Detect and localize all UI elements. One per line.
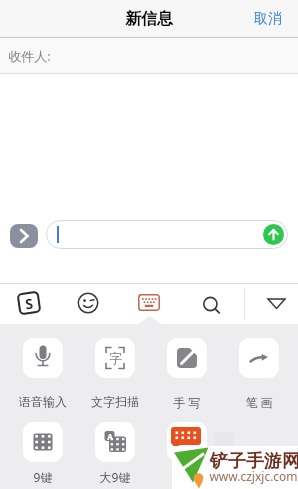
staticText: 字 xyxy=(109,350,122,366)
button[interactable] xyxy=(138,294,160,311)
button[interactable]: 取消 xyxy=(254,10,282,28)
button[interactable]: S xyxy=(17,291,41,315)
button[interactable]: A xyxy=(95,422,135,462)
staticText: 铲子手游网 xyxy=(210,450,298,473)
button[interactable] xyxy=(202,296,222,316)
staticText: 收件人: xyxy=(8,47,51,65)
button[interactable] xyxy=(77,292,99,314)
button[interactable] xyxy=(167,338,207,378)
button[interactable] xyxy=(23,338,63,378)
staticText: S xyxy=(24,293,34,313)
button[interactable] xyxy=(10,224,38,248)
button[interactable]: 收件人: xyxy=(0,38,298,73)
staticText: 大9键 xyxy=(91,469,139,485)
staticText: 9键 xyxy=(19,469,67,485)
staticText: 文字扫描 xyxy=(91,394,139,409)
button[interactable] xyxy=(239,338,279,378)
button[interactable]: 字 xyxy=(95,338,135,378)
staticText: 取消 xyxy=(254,10,282,28)
staticText: 语音输入 xyxy=(19,394,67,409)
button[interactable] xyxy=(267,298,286,310)
button[interactable] xyxy=(46,220,288,249)
staticText: 新信息 xyxy=(125,9,173,29)
button[interactable] xyxy=(167,422,207,462)
staticText: 笔 画 xyxy=(235,394,283,410)
staticText: 手 写 xyxy=(163,394,211,410)
button[interactable] xyxy=(23,422,63,462)
staticText: A xyxy=(107,431,113,442)
staticText: www.czjxjc.com xyxy=(209,468,298,484)
button[interactable] xyxy=(263,224,284,245)
